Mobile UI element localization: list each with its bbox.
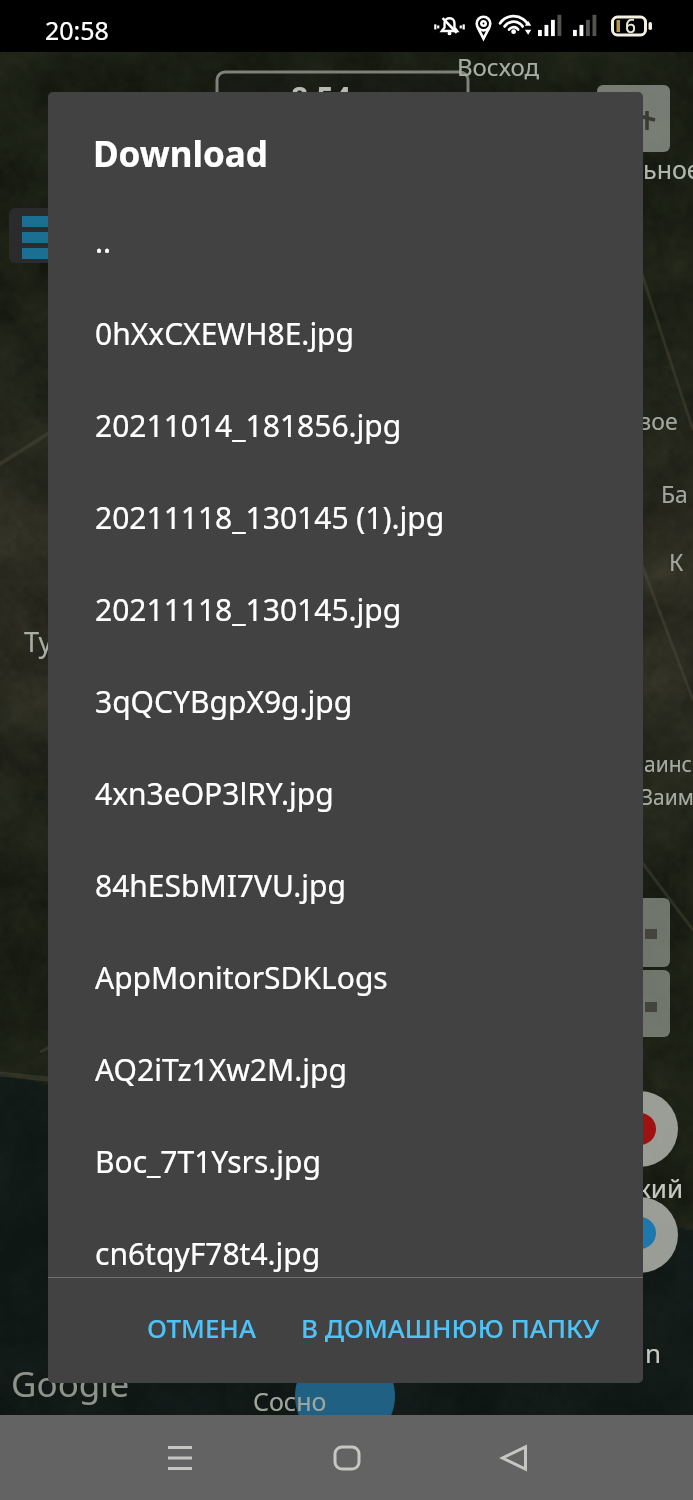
- staticText: n: [645, 1335, 662, 1370]
- button[interactable]: 20211118_130145 (1).jpg: [48, 471, 643, 563]
- button[interactable]: ОТМЕНА: [130, 1296, 273, 1359]
- staticText: 20211014_181856.jpg: [95, 405, 402, 446]
- button[interactable]: AQ2iTz1Xw2M.jpg: [48, 1023, 643, 1115]
- staticText: Восход: [457, 50, 540, 83]
- staticText: аинс: [644, 750, 692, 779]
- staticText: В ДОМАШНЮЮ ПАПКУ: [301, 1310, 600, 1345]
- button[interactable]: ..: [48, 195, 643, 287]
- staticText: 20:58: [45, 13, 109, 47]
- staticText: Ту: [24, 623, 53, 660]
- staticText: AppMonitorSDKLogs: [95, 957, 388, 998]
- button[interactable]: Recent apps: [96, 1415, 263, 1500]
- button[interactable]: 20211118_130145.jpg: [48, 563, 643, 655]
- staticText: 6: [625, 13, 636, 39]
- button[interactable]: Back: [430, 1415, 597, 1500]
- staticText: Boc_7T1Ysrs.jpg: [95, 1141, 321, 1182]
- staticText: 84hESbMI7VU.jpg: [95, 865, 347, 906]
- button[interactable]: AppMonitorSDKLogs: [48, 931, 643, 1023]
- button[interactable]: 0hXxCXEWH8E.jpg: [48, 287, 643, 379]
- staticText: 20211118_130145.jpg: [95, 589, 402, 630]
- button[interactable]: 20211014_181856.jpg: [48, 379, 643, 471]
- staticText: 3qQCYBgpX9g.jpg: [95, 681, 353, 722]
- staticText: cn6tqyF78t4.jpg: [95, 1233, 321, 1274]
- staticText: ьное: [643, 152, 693, 186]
- button[interactable]: Boc_7T1Ysrs.jpg: [48, 1115, 643, 1207]
- button[interactable]: В ДОМАШНЮЮ ПАПКУ: [284, 1296, 617, 1359]
- button[interactable]: Home: [263, 1415, 430, 1500]
- staticText: Ба: [661, 478, 688, 509]
- staticText: 8.54км: [291, 77, 395, 118]
- button[interactable]: 84hESbMI7VU.jpg: [48, 839, 643, 931]
- staticText: К: [669, 546, 684, 577]
- staticText: 20211118_130145 (1).jpg: [95, 497, 445, 538]
- staticText: ..: [95, 221, 112, 262]
- button[interactable]: 4xn3eOP3lRY.jpg: [48, 747, 643, 839]
- staticText: Google: [11, 1360, 130, 1408]
- staticText: 4xn3eOP3lRY.jpg: [95, 773, 334, 814]
- button[interactable]: cn6tqyF78t4.jpg: [48, 1207, 643, 1299]
- staticText: AQ2iTz1Xw2M.jpg: [95, 1049, 347, 1090]
- button[interactable]: 3qQCYBgpX9g.jpg: [48, 655, 643, 747]
- staticText: 0hXxCXEWH8E.jpg: [95, 313, 355, 354]
- staticText: Download: [93, 130, 268, 178]
- staticText: Заим: [641, 783, 693, 812]
- staticText: Сосно: [253, 1384, 327, 1418]
- staticText: кий: [637, 1170, 684, 1205]
- staticText: зое: [640, 405, 678, 436]
- staticText: ОТМЕНА: [147, 1310, 256, 1345]
